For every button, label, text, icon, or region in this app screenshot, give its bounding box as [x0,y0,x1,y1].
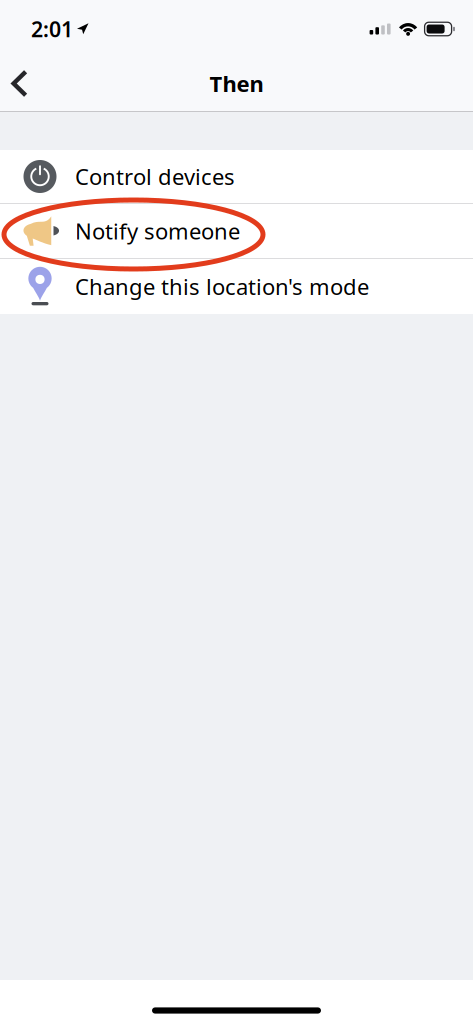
staticText: Notify someone [75,216,240,246]
staticText: Control devices [75,161,235,191]
staticText: 2:01 [31,14,73,44]
button[interactable]: Control devices [0,150,473,203]
staticText: Then [209,68,263,98]
staticText: Change this location's mode [75,271,369,301]
button[interactable]: Notify someone [0,204,473,258]
button[interactable]: Back [0,58,44,109]
button[interactable]: Change this location's mode [0,259,473,314]
